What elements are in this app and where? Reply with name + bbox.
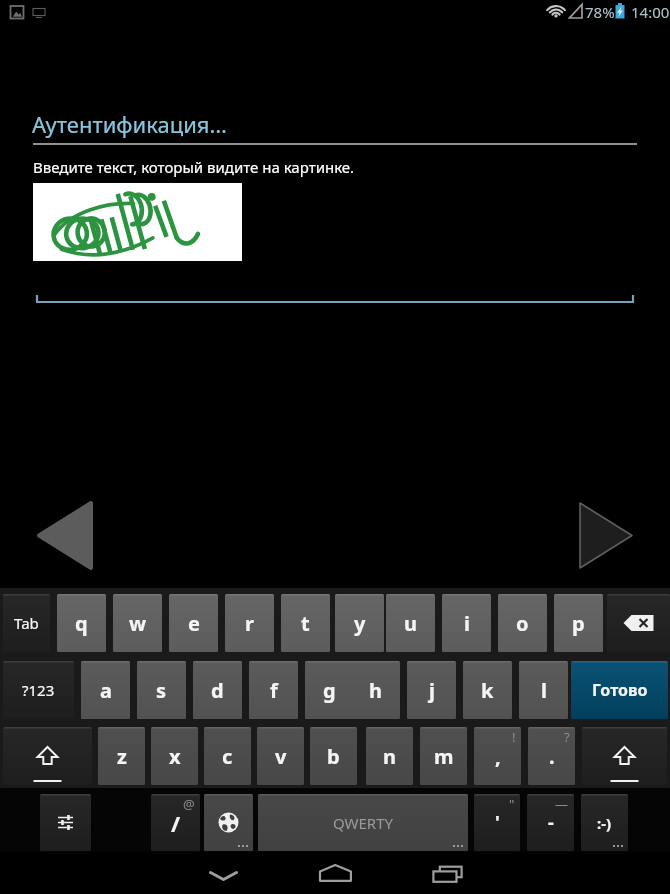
button[interactable]: y	[335, 594, 384, 652]
button[interactable]: shift	[582, 727, 667, 785]
staticText: "	[509, 795, 515, 813]
button[interactable]: Next	[579, 501, 632, 570]
button[interactable]: globe	[204, 794, 253, 851]
button[interactable]: p	[554, 594, 603, 652]
staticText: ?123	[22, 680, 55, 700]
staticText: d	[211, 677, 224, 704]
staticText: 78%	[585, 2, 615, 22]
staticText: q	[75, 610, 88, 637]
staticText: u	[404, 610, 417, 637]
staticText: .	[549, 743, 555, 770]
button[interactable]: w	[113, 594, 162, 652]
staticText: ?	[564, 728, 570, 746]
button[interactable]: f	[249, 661, 298, 719]
button[interactable]: Home	[306, 852, 365, 894]
button[interactable]: r	[225, 594, 274, 652]
button[interactable]: e	[169, 594, 218, 652]
staticText: v	[275, 743, 287, 770]
button[interactable]: /	[151, 794, 200, 851]
button[interactable]: ?123	[3, 661, 74, 719]
button[interactable]: t	[281, 594, 330, 652]
staticText: r	[245, 610, 254, 637]
staticText: b	[327, 743, 340, 770]
staticText: z	[117, 743, 127, 770]
staticText: o	[516, 610, 529, 637]
staticText: x	[169, 743, 181, 770]
button[interactable]: d	[193, 661, 242, 719]
button[interactable]: l	[519, 661, 568, 719]
button[interactable]: :-)	[581, 794, 628, 851]
staticText: QWERTY	[333, 813, 394, 833]
button[interactable]: m	[420, 727, 467, 785]
staticText: i	[464, 610, 470, 637]
staticText: —	[555, 795, 569, 813]
staticText: f	[270, 677, 278, 704]
staticText: a	[100, 677, 112, 704]
button[interactable]: x	[151, 727, 198, 785]
staticText: '	[495, 810, 500, 835]
button[interactable]: q	[57, 594, 106, 652]
staticText: /	[171, 808, 181, 838]
button[interactable]: Hide keyboard	[194, 852, 253, 894]
button[interactable]: settings	[40, 794, 91, 851]
button[interactable]: '	[474, 794, 520, 851]
button[interactable]: a	[81, 661, 130, 719]
button[interactable]: n	[366, 727, 413, 785]
button[interactable]: Recent apps	[418, 852, 477, 894]
staticText: j	[429, 677, 435, 704]
button[interactable]: i	[442, 594, 491, 652]
button[interactable]: b	[310, 727, 357, 785]
staticText: -	[548, 810, 554, 835]
staticText: g	[323, 677, 336, 704]
staticText: k	[481, 677, 494, 704]
staticText: Готово	[592, 679, 648, 701]
staticText: 14:00	[631, 2, 670, 22]
button[interactable]: c	[204, 727, 251, 785]
button[interactable]: u	[386, 594, 435, 652]
button[interactable]: .	[528, 727, 575, 785]
button[interactable]: z	[98, 727, 145, 785]
staticText: n	[383, 743, 396, 770]
staticText: l	[541, 677, 547, 704]
button[interactable]: shift	[3, 727, 92, 785]
button[interactable]: Готово	[571, 661, 668, 719]
staticText: p	[572, 610, 585, 637]
button[interactable]: backspace	[607, 594, 670, 652]
staticText: Аутентификация…	[32, 109, 227, 139]
button[interactable]: QWERTY	[258, 794, 468, 851]
staticText: Tab	[14, 613, 39, 633]
button[interactable]: ,	[474, 727, 521, 785]
button[interactable]: -	[527, 794, 574, 851]
button[interactable]: h	[351, 661, 400, 719]
staticText: w	[129, 610, 147, 637]
button[interactable]: Previous	[38, 501, 91, 570]
staticText: Введите текст, который видите на картинк…	[33, 157, 355, 177]
staticText: c	[222, 743, 233, 770]
staticText: e	[188, 610, 200, 637]
button[interactable]: Tab	[3, 594, 50, 652]
staticText: t	[301, 610, 310, 637]
staticText: m	[434, 743, 454, 770]
button[interactable]: g	[305, 661, 354, 719]
button[interactable]: k	[463, 661, 512, 719]
staticText: :-)	[597, 813, 612, 833]
staticText: y	[354, 610, 366, 637]
staticText: @	[183, 795, 195, 813]
staticText: !	[512, 728, 516, 746]
staticText: h	[369, 677, 382, 704]
button[interactable]: s	[137, 661, 186, 719]
button[interactable]: j	[407, 661, 456, 719]
button[interactable]: o	[498, 594, 547, 652]
staticText: ,	[495, 743, 501, 770]
button[interactable]: v	[257, 727, 304, 785]
staticText: s	[156, 677, 167, 704]
